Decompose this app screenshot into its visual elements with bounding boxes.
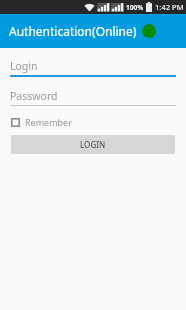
button[interactable]: Remember bbox=[9, 113, 74, 131]
staticText: Remember bbox=[25, 116, 72, 128]
other: Wi-Fi signal bbox=[84, 3, 95, 12]
button[interactable]: Password bbox=[0, 87, 186, 106]
staticText: Password bbox=[10, 89, 58, 103]
staticText: Authentication(Online) bbox=[9, 23, 137, 39]
staticText: 100% bbox=[126, 3, 144, 12]
staticText: Login bbox=[10, 59, 38, 73]
other: Battery full bbox=[146, 2, 152, 12]
staticText: LOGIN bbox=[80, 139, 106, 150]
button[interactable]: LOGIN bbox=[11, 135, 175, 154]
other: Online status indicator bbox=[142, 24, 156, 38]
staticText: 1:42 PM bbox=[155, 2, 184, 12]
other: Mobile signal bbox=[97, 3, 110, 12]
button[interactable]: Login bbox=[0, 57, 186, 77]
other: Mobile signal bbox=[111, 3, 124, 12]
